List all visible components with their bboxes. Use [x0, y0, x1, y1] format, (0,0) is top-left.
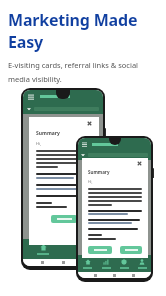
button[interactable]: Nav item 2 [97, 255, 115, 272]
button[interactable]: Nav item 1 [78, 255, 97, 272]
staticText: Hi, [36, 141, 42, 146]
staticText: E-visiting cards, referral links & socia… [8, 60, 139, 70]
button[interactable]: Action button [88, 246, 112, 254]
button[interactable]: Menu [82, 142, 87, 147]
staticText: Summary [36, 130, 60, 137]
button[interactable]: Nav item 3 [115, 255, 133, 272]
staticText: Summary [88, 169, 110, 175]
button[interactable]: Action button [120, 246, 142, 254]
button[interactable]: Nav item 1 [23, 239, 63, 259]
button[interactable]: Nav item 4 [133, 255, 151, 272]
button[interactable]: Close [137, 161, 142, 166]
staticText: Hi, [88, 179, 93, 184]
staticText: media visibility. [8, 74, 62, 84]
staticText: Marketing Made Easy [8, 9, 166, 53]
button[interactable]: Menu [28, 94, 34, 100]
button[interactable]: Action button [51, 215, 77, 223]
button[interactable]: Nav item 2 [63, 239, 103, 259]
button[interactable]: Close [87, 121, 92, 126]
